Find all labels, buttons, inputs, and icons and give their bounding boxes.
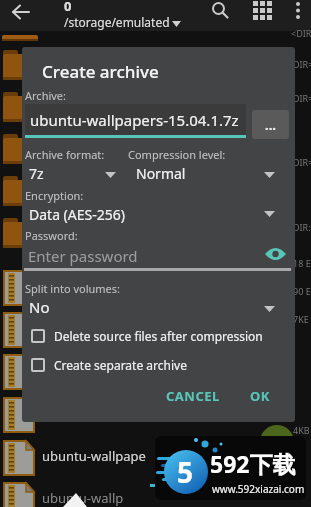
staticText: 0: [64, 0, 72, 15]
staticText: www.592xiazai.com: [212, 482, 305, 496]
button[interactable]: Delete source files after compression: [31, 328, 263, 344]
staticText: Password:: [25, 228, 78, 243]
staticText: 592下载: [210, 448, 296, 479]
staticText: ubuntu-wallpape: [42, 447, 146, 465]
button[interactable]: [265, 247, 286, 261]
staticText: Compression level:: [128, 147, 226, 162]
button[interactable]: [3, 441, 153, 475]
button[interactable]: CANCEL: [158, 380, 228, 412]
staticText: Split into volumes:: [25, 281, 121, 296]
staticText: 7z: [29, 164, 44, 183]
staticText: CANCEL: [166, 387, 220, 405]
staticText: DIR=: [293, 156, 311, 168]
staticText: Create archive: [42, 60, 159, 83]
staticText: DIR=: [293, 92, 311, 104]
button[interactable]: OK: [238, 380, 282, 412]
staticText: Archive:: [25, 88, 67, 103]
button[interactable]: ubuntu-wallpapers-15.04.1.7z: [25, 104, 246, 138]
staticText: DIR=: [293, 58, 311, 70]
staticText: 18 E: [293, 257, 311, 269]
button[interactable]: Create separate archive: [31, 357, 187, 373]
staticText: Enter password: [28, 246, 138, 266]
staticText: Normal: [136, 164, 186, 183]
button[interactable]: Enter password: [25, 243, 290, 271]
button[interactable]: [13, 5, 30, 19]
staticText: OK: [250, 387, 270, 405]
staticText: 7KE: [293, 313, 309, 325]
staticText: ubuntu-wallp: [42, 489, 124, 507]
staticText: 4KB: [293, 424, 310, 436]
staticText: 5: [177, 453, 194, 491]
button[interactable]: No: [25, 296, 290, 320]
staticText: No: [29, 297, 50, 317]
staticText: <DIR:: [291, 27, 311, 39]
staticText: Create separate archive: [54, 357, 187, 373]
button[interactable]: [212, 2, 229, 19]
staticText: Delete source files after compression: [54, 328, 263, 344]
button[interactable]: 7z: [25, 163, 120, 185]
staticText: Archive format:: [25, 147, 105, 162]
button[interactable]: Normal: [130, 163, 290, 185]
staticText: /storage/emulated: [64, 14, 170, 30]
staticText: ...: [265, 116, 276, 134]
staticText: Data (AES-256): [29, 205, 125, 224]
button[interactable]: Data (AES-256): [25, 204, 290, 226]
staticText: DIR:: [293, 221, 311, 233]
staticText: 90 E: [293, 285, 311, 297]
staticText: Encryption:: [25, 188, 84, 203]
button[interactable]: ...: [252, 110, 289, 139]
staticText: ubuntu-wallpapers-15.04.1.7z: [30, 110, 239, 130]
button[interactable]: [253, 1, 272, 20]
button[interactable]: [294, 1, 302, 20]
